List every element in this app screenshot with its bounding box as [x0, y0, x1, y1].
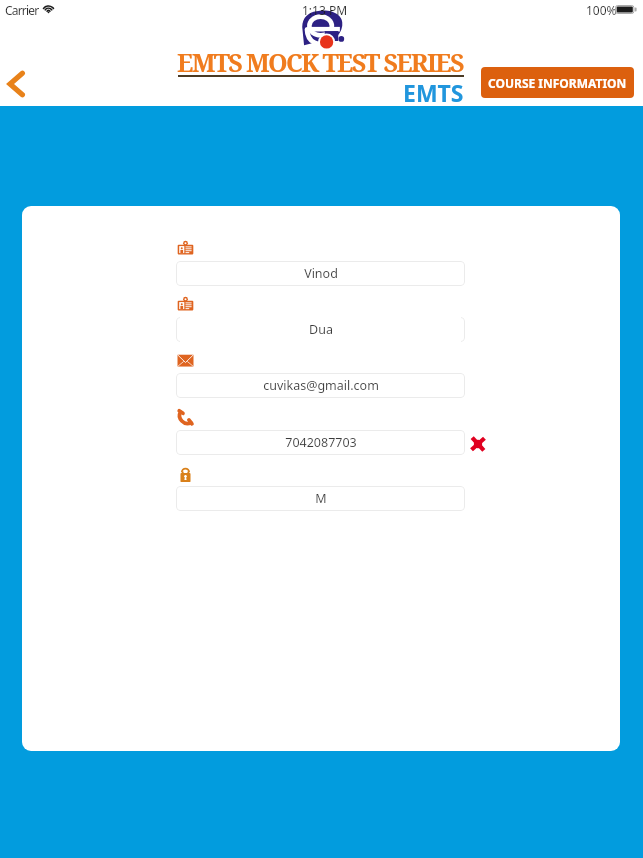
button[interactable]: M — [176, 486, 465, 511]
button[interactable]: 7042087703 — [176, 430, 465, 455]
button[interactable]: cuvikas@gmail.com — [176, 373, 465, 398]
button[interactable]: COURSE INFORMATION — [481, 67, 634, 98]
staticText: EMTS — [403, 77, 464, 108]
staticText: Carrier — [5, 2, 39, 18]
staticText: Vinod — [304, 265, 338, 282]
staticText: 100% — [586, 2, 617, 18]
button[interactable]: Back — [0, 62, 38, 106]
button[interactable]: Dua — [176, 317, 465, 342]
staticText: cuvikas@gmail.com — [263, 377, 379, 394]
staticText: EMTS MOCK TEST SERIES — [177, 45, 463, 79]
staticText: Dua — [309, 321, 333, 338]
staticText: COURSE INFORMATION — [488, 75, 627, 91]
button[interactable]: Vinod — [176, 261, 465, 286]
staticText: 1:13 PM — [302, 2, 348, 18]
staticText: 7042087703 — [285, 434, 357, 451]
staticText: M — [315, 490, 327, 507]
